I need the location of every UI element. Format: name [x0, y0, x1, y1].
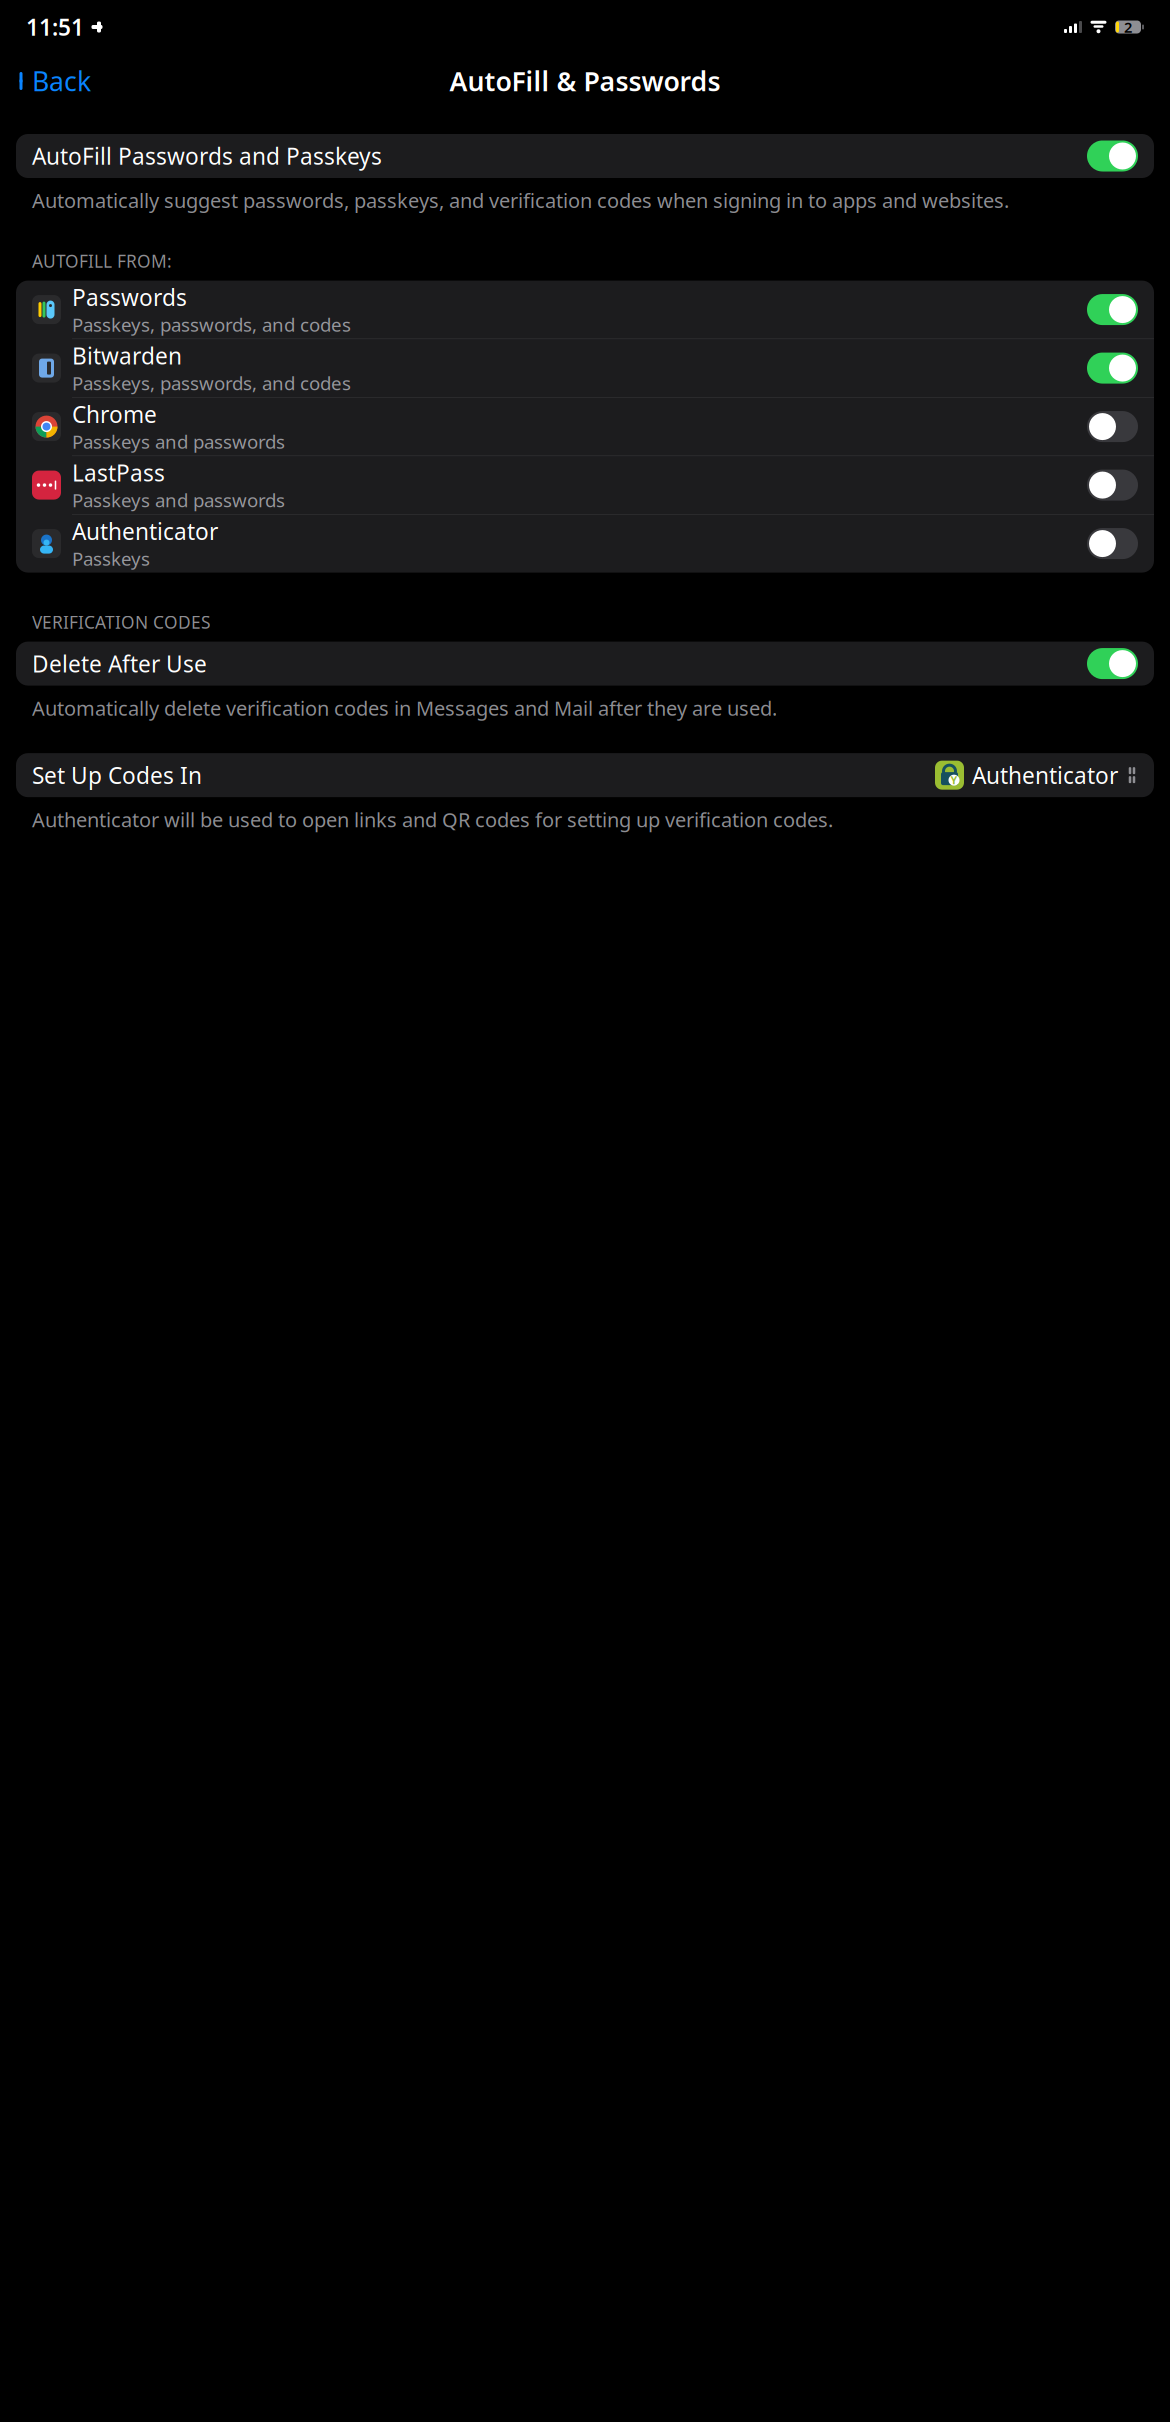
- staticText: Authenticator will be used to open links…: [32, 806, 833, 833]
- staticText: 2: [1124, 17, 1132, 37]
- staticText: Authenticator: [72, 516, 218, 546]
- staticText: Passkeys and passwords: [72, 488, 285, 512]
- staticText: 11:51: [26, 12, 84, 42]
- staticText: Chrome: [72, 399, 157, 429]
- staticText: Passwords: [72, 282, 187, 312]
- staticText: AutoFill Passwords and Passkeys: [32, 141, 382, 171]
- staticText: Y: [950, 773, 957, 787]
- staticText: AUTOFILL FROM:: [32, 250, 172, 273]
- staticText: LastPass: [72, 458, 165, 488]
- button[interactable]: AutoFill Passwords and Passkeys: [16, 134, 1154, 178]
- staticText: Set Up Codes In: [32, 760, 202, 790]
- staticText: Bitwarden: [72, 341, 182, 371]
- button[interactable]: Delete After Use: [16, 642, 1154, 686]
- button[interactable]: Authenticator: [16, 515, 1154, 573]
- button[interactable]: Set Up Codes In: [16, 753, 1154, 797]
- button[interactable]: Passwords: [16, 281, 1154, 339]
- button[interactable]: Back: [8, 57, 99, 105]
- button[interactable]: LastPass: [16, 456, 1154, 514]
- staticText: VERIFICATION CODES: [32, 611, 211, 634]
- staticText: Automatically suggest passwords, passkey…: [32, 187, 1009, 214]
- button[interactable]: Bitwarden: [16, 339, 1154, 397]
- staticText: Back: [32, 63, 91, 99]
- staticText: Automatically delete verification codes …: [32, 695, 777, 721]
- staticText: Authenticator: [972, 760, 1118, 790]
- staticText: AutoFill & Passwords: [449, 63, 720, 99]
- staticText: Passkeys and passwords: [72, 429, 285, 454]
- staticText: Passkeys, passwords, and codes: [72, 371, 351, 395]
- staticText: Passkeys, passwords, and codes: [72, 312, 351, 337]
- staticText: Passkeys: [72, 546, 150, 571]
- button[interactable]: Chrome: [16, 398, 1154, 456]
- staticText: Delete After Use: [32, 648, 207, 679]
